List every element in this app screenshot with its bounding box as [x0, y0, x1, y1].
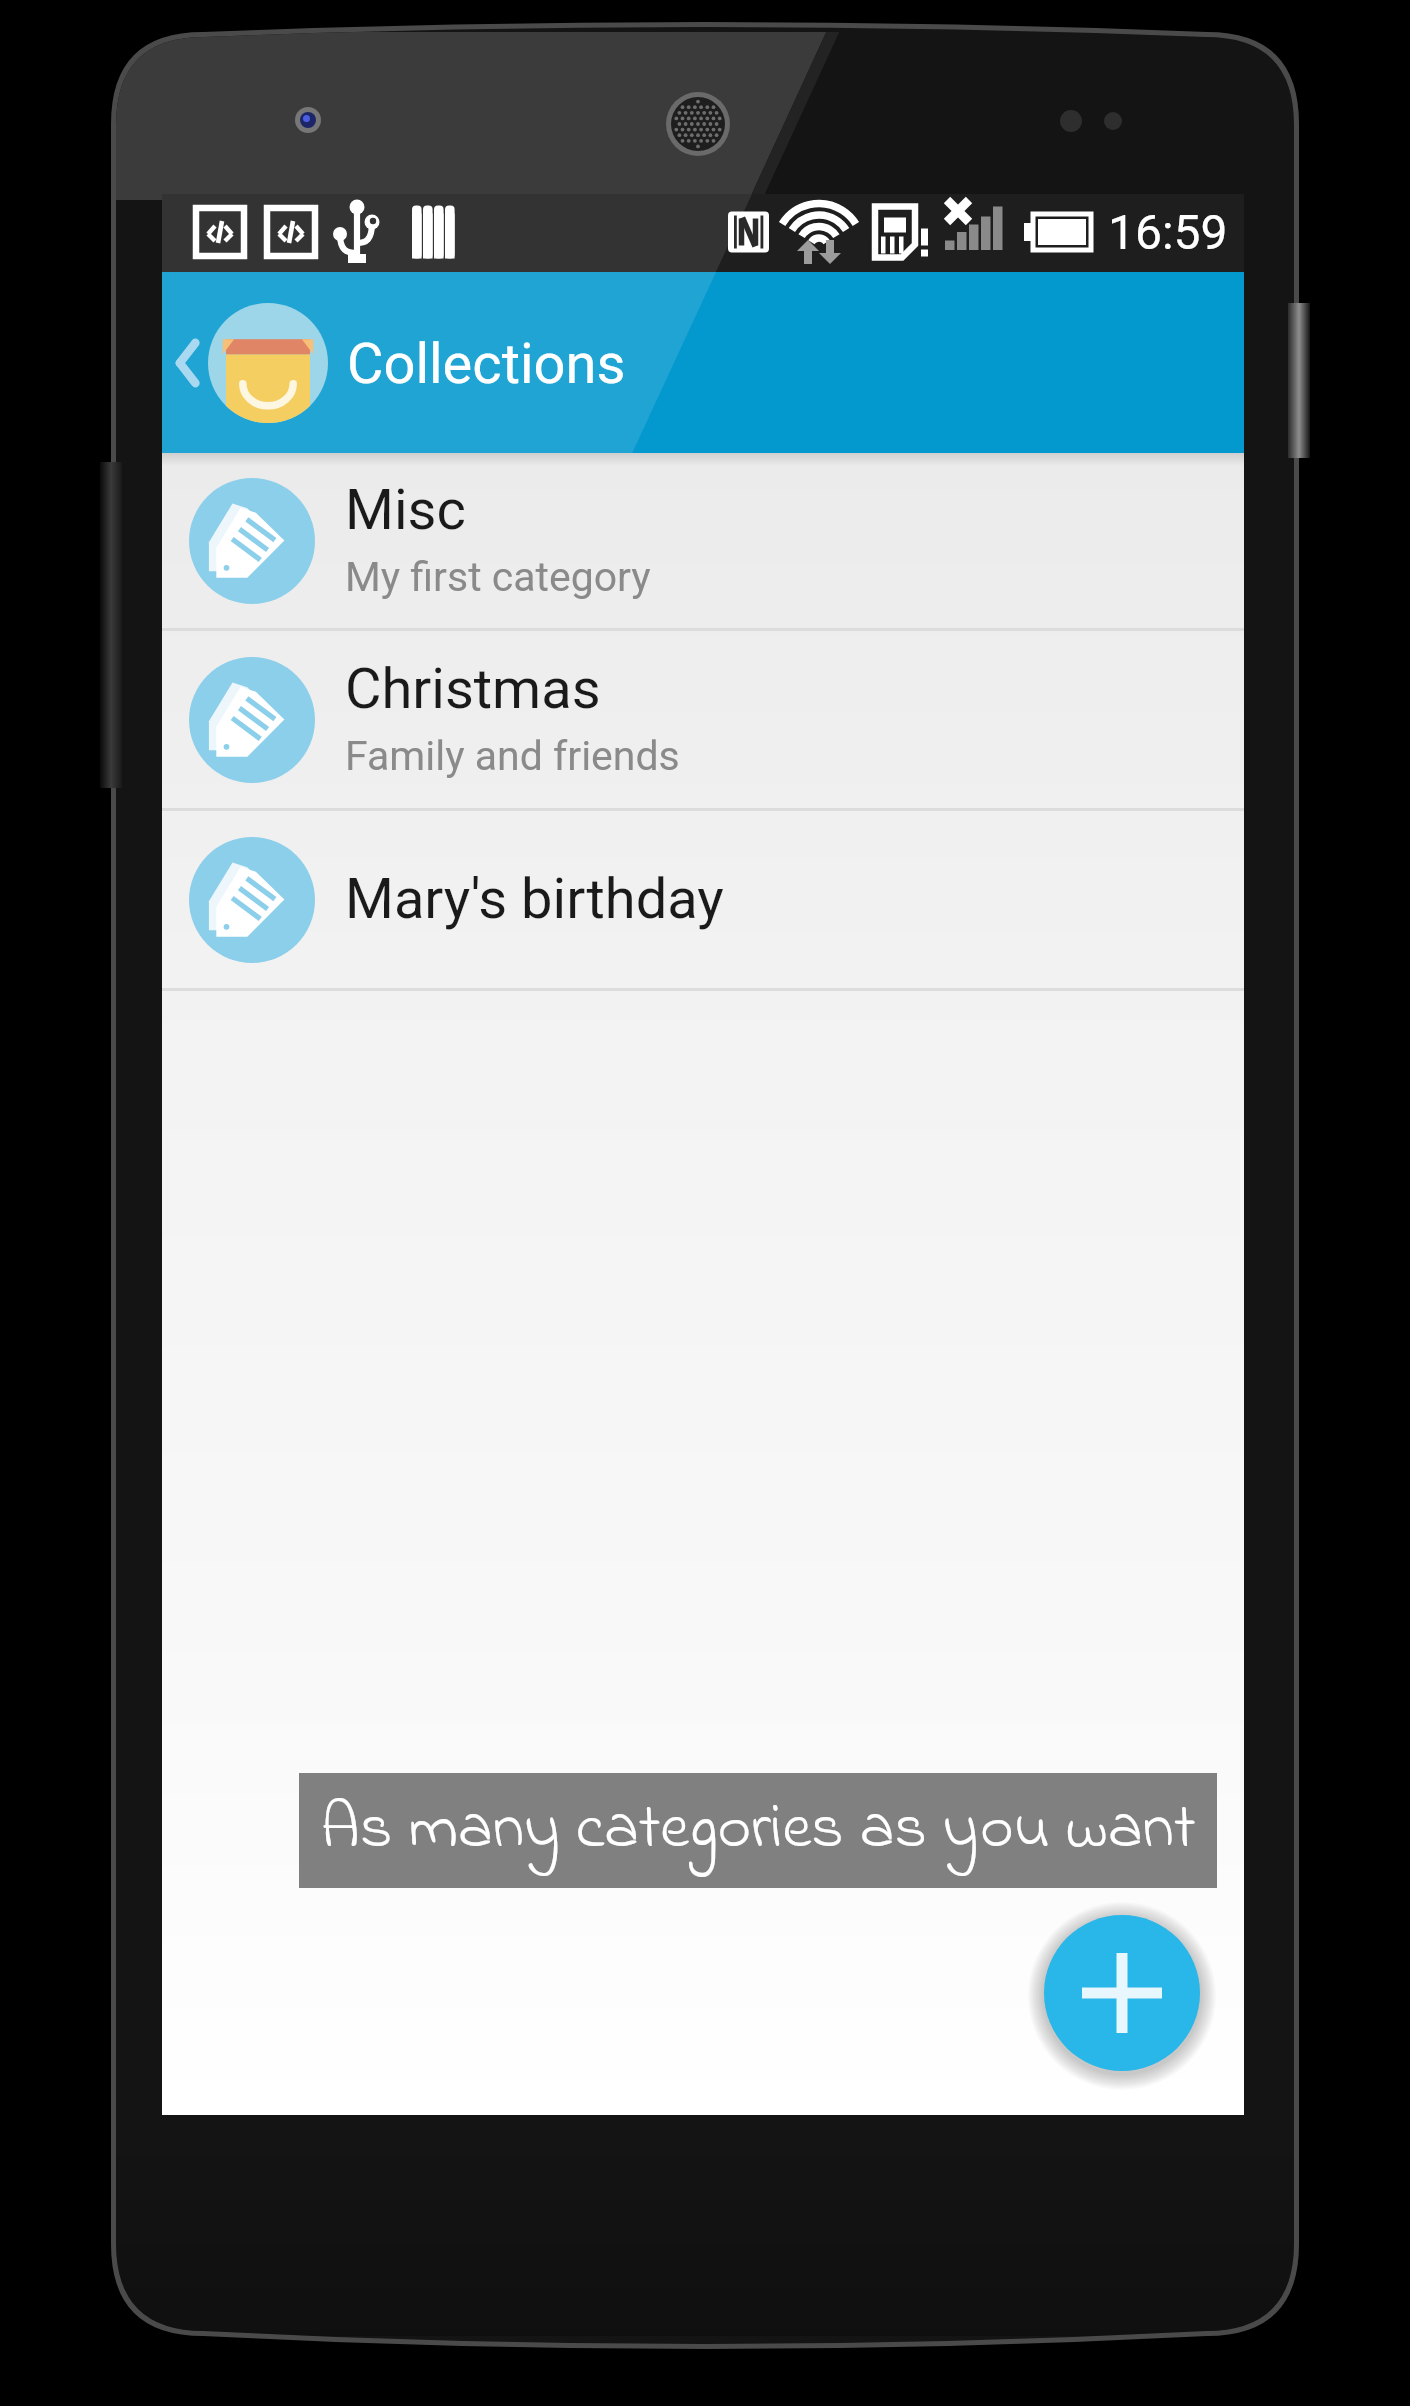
button[interactable]: Add collection [1042, 1913, 1202, 2073]
staticText: Mary's birthday [345, 866, 724, 932]
staticText: Christmas [345, 656, 601, 722]
button[interactable]: Christmas [162, 631, 1244, 808]
staticText: 16:59 [1108, 204, 1228, 260]
button[interactable]: Navigate up [162, 272, 324, 453]
button[interactable]: Misc [162, 453, 1244, 628]
staticText: As many categories as you want [320, 1784, 1196, 1877]
staticText: Collections [347, 331, 626, 397]
staticText: Family and friends [345, 732, 680, 780]
staticText: My first category [345, 553, 651, 601]
button[interactable]: Mary's birthday [162, 811, 1244, 988]
staticText: Misc [345, 477, 466, 543]
